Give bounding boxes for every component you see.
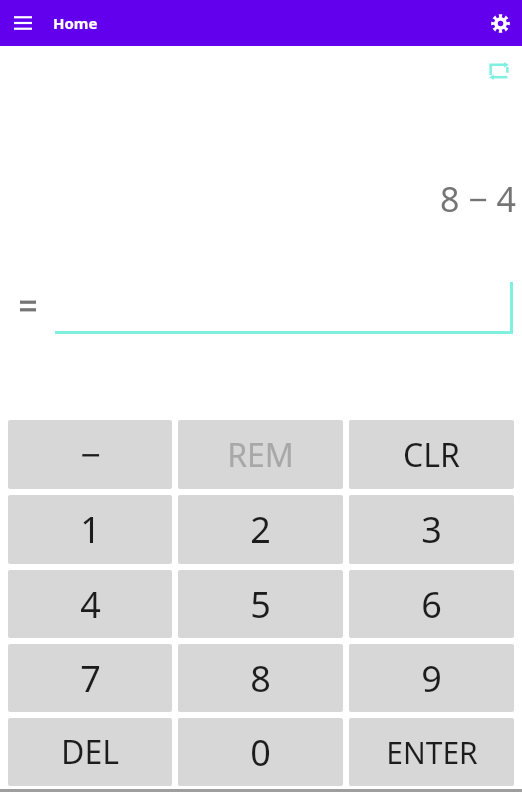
staticText: 0	[250, 728, 271, 777]
button[interactable]: 5	[178, 570, 343, 638]
button[interactable]: 9	[349, 644, 514, 712]
button[interactable]: ENTER	[349, 718, 514, 786]
button[interactable]: 6	[349, 570, 514, 638]
staticText: DEL	[61, 730, 119, 774]
button[interactable]: 0	[178, 718, 343, 786]
button[interactable]: DEL	[8, 718, 172, 786]
button[interactable]: 8	[178, 644, 343, 712]
staticText: 6	[421, 580, 442, 629]
button[interactable]: 3	[349, 495, 514, 564]
staticText: 8	[250, 654, 271, 703]
staticText: 4	[80, 580, 101, 629]
button[interactable]: 7	[8, 644, 172, 712]
staticText: 3	[421, 505, 442, 554]
button[interactable]: Repeat	[482, 54, 516, 88]
staticText: ENTER	[386, 732, 478, 773]
button[interactable]: CLR	[349, 420, 514, 489]
staticText: CLR	[403, 433, 460, 477]
staticText: 7	[80, 654, 101, 703]
staticText: −	[80, 430, 101, 479]
staticText: 5	[250, 580, 271, 629]
staticText: REM	[227, 433, 294, 477]
button[interactable]: Settings	[484, 7, 516, 39]
staticText: 8 − 4	[0, 176, 516, 222]
button[interactable]: 4	[8, 570, 172, 638]
staticText: Home	[53, 13, 98, 33]
staticText: 1	[80, 505, 101, 554]
staticText: 2	[250, 505, 271, 554]
button[interactable]: 1	[8, 495, 172, 564]
button[interactable]: −	[8, 420, 172, 489]
staticText: 9	[421, 654, 442, 703]
button[interactable]: Answer field	[55, 278, 513, 334]
button[interactable]: 2	[178, 495, 343, 564]
button[interactable]: Open navigation menu	[7, 7, 39, 39]
button: REM	[178, 420, 343, 489]
